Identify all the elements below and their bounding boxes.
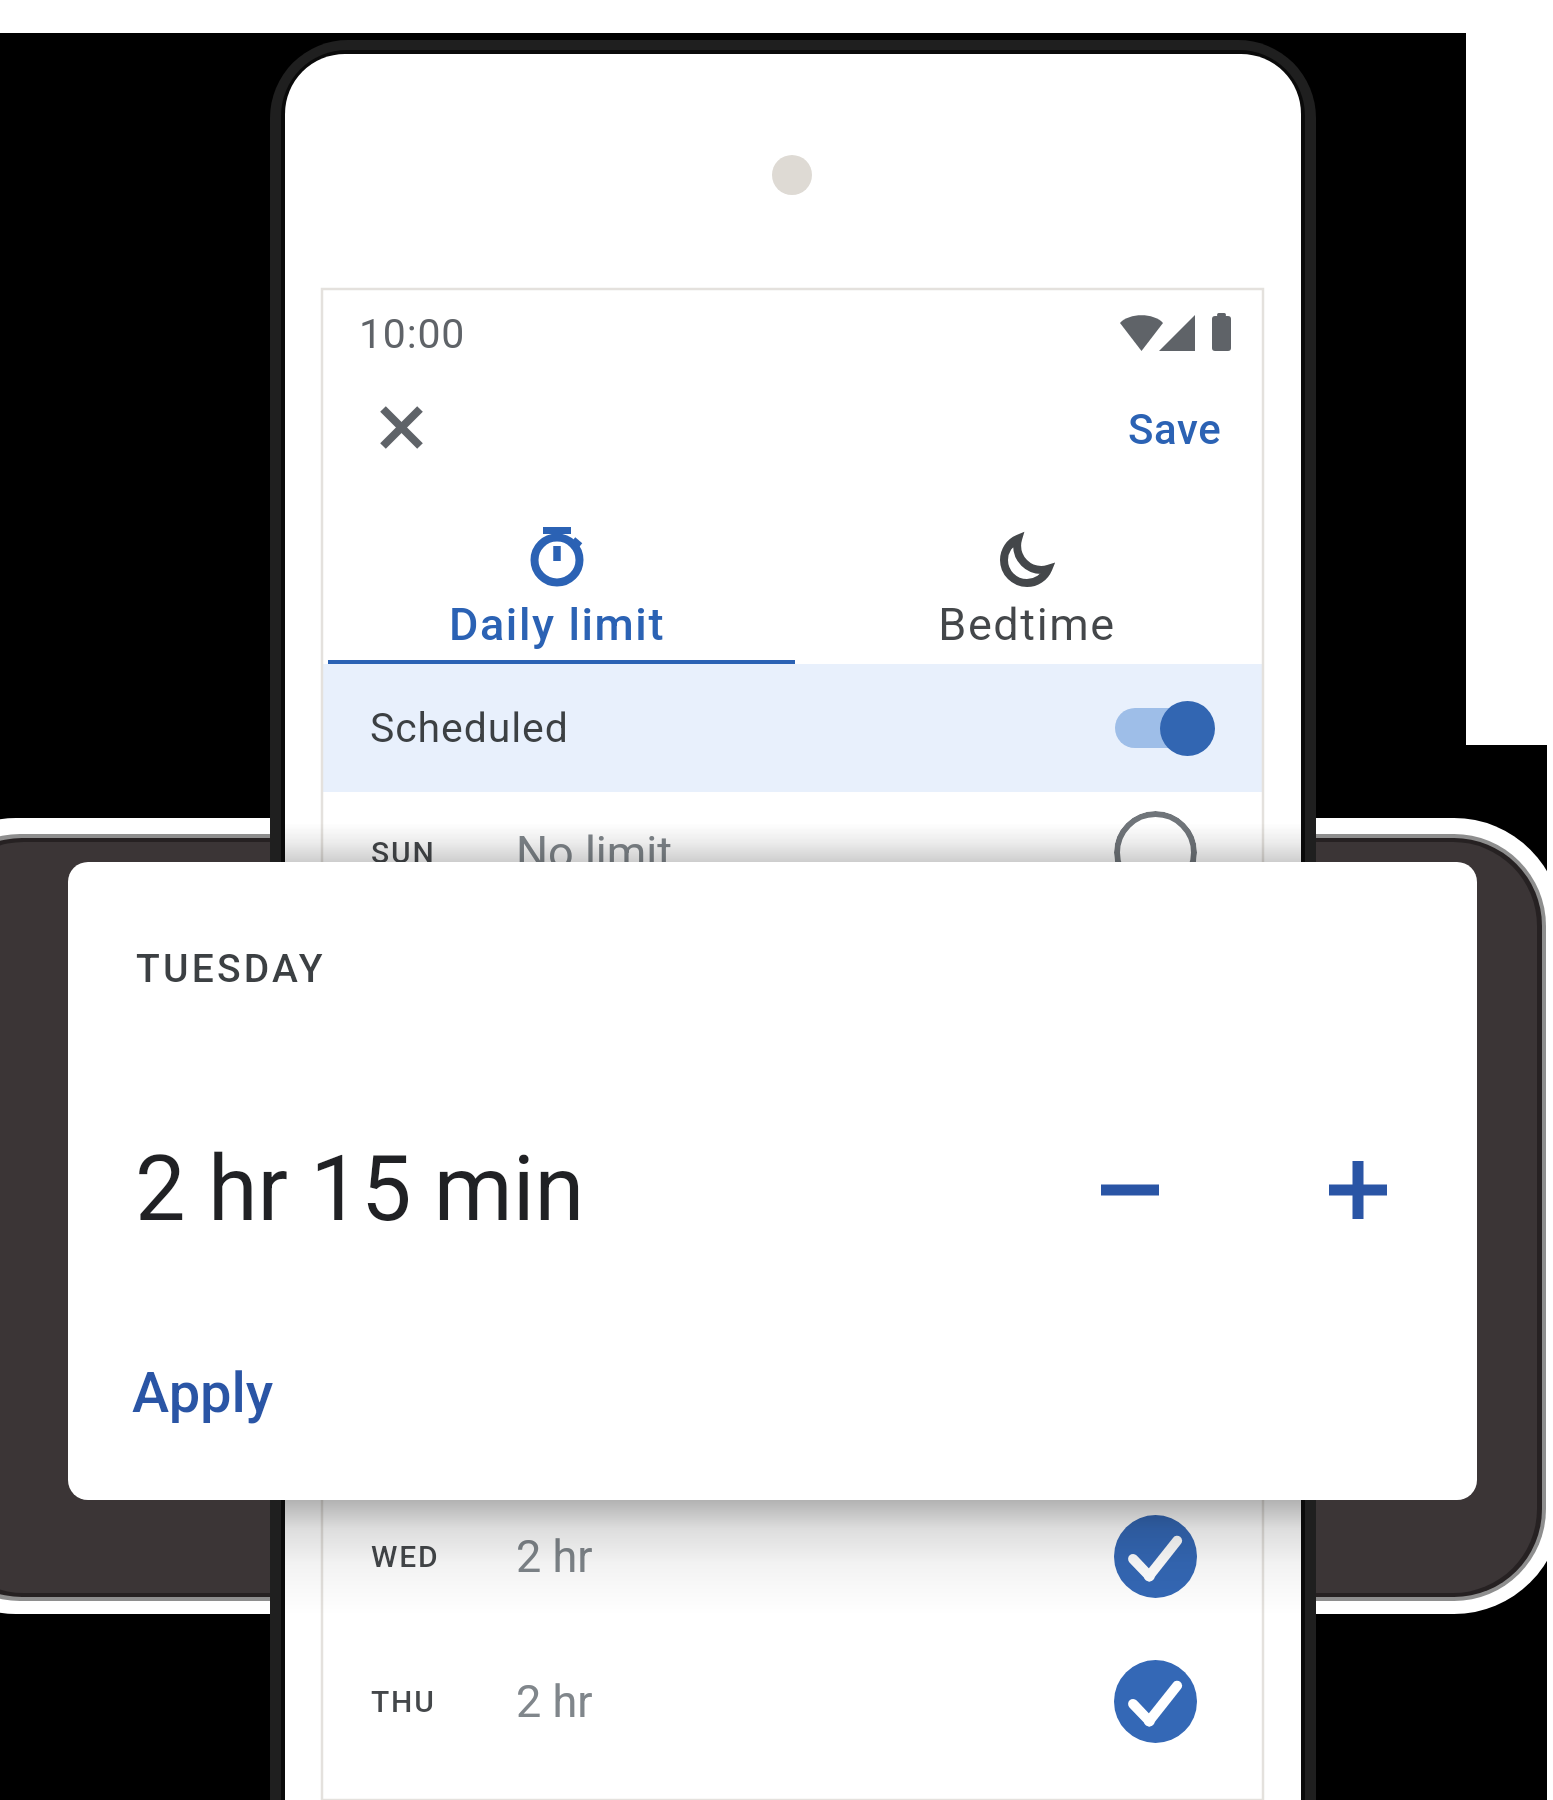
staticText: Save [1128,405,1222,454]
staticText: 2 hr 15 min [135,1137,585,1242]
button[interactable]: Apply [132,1360,274,1426]
button[interactable]: SUN [322,780,1263,924]
staticText: TUESDAY [136,946,326,992]
staticText: WED [371,1539,440,1574]
staticText: 2 hr [516,1675,593,1728]
button[interactable]: THU [322,1629,1263,1773]
staticText: THU [371,1684,436,1719]
button[interactable]: Decrease [1080,1140,1180,1240]
staticText: 2 hr [516,1530,593,1583]
staticText: No limit [516,826,672,879]
button[interactable]: Save [1112,391,1238,468]
button[interactable]: Close [358,384,444,470]
staticText: SUN [371,835,436,870]
button[interactable]: Increase [1308,1140,1408,1240]
staticText: Scheduled [370,704,569,752]
button[interactable]: Bedtime [792,520,1262,700]
staticText: Daily limit [449,598,665,651]
button[interactable]: Daily limit [322,520,792,700]
button[interactable]: WED [322,1484,1263,1628]
button[interactable]: MON [322,1194,1263,1338]
staticText: Bedtime [938,598,1116,651]
button[interactable]: Scheduled [322,664,1263,792]
staticText: 10:00 [359,310,466,358]
